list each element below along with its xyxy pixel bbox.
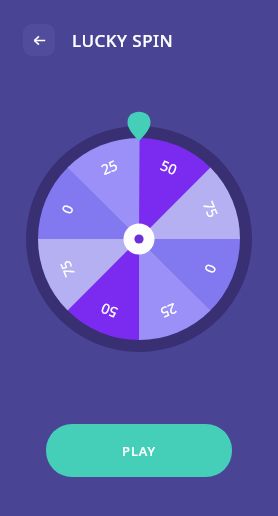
button[interactable]: PLAY (46, 424, 232, 477)
button[interactable]: Back (23, 24, 55, 56)
staticText: LUCKY SPIN (72, 29, 174, 52)
staticText: PLAY (122, 442, 157, 460)
